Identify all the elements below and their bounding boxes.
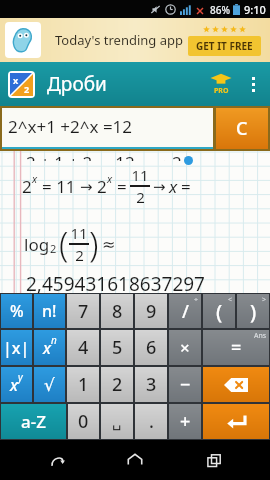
staticText: → — [153, 178, 166, 195]
button[interactable]: n! — [34, 294, 65, 328]
button[interactable]: Today's trending app — [0, 18, 270, 62]
button[interactable]: GET IT FREE — [196, 39, 253, 53]
button[interactable]: |x| — [1, 330, 32, 365]
staticText: ) — [89, 221, 99, 267]
staticText: ÷ — [194, 295, 199, 305]
staticText: x — [13, 74, 19, 86]
staticText: = — [117, 175, 127, 198]
staticText: 6 — [146, 335, 157, 360]
button[interactable]: C — [216, 108, 268, 149]
button[interactable]: × — [169, 330, 201, 365]
staticText: ( — [216, 298, 223, 325]
staticText: a-Z — [21, 410, 46, 433]
staticText: 1 — [78, 372, 89, 397]
staticText: 5 — [112, 335, 123, 360]
staticText: x — [107, 172, 113, 186]
staticText: ) — [250, 298, 257, 325]
staticText: Ans — [254, 331, 267, 341]
button[interactable]: Home — [113, 440, 157, 480]
button[interactable]: x — [1, 367, 32, 402]
button[interactable]: 2 — [101, 367, 133, 402]
staticText: Дроби — [47, 71, 107, 97]
button[interactable]: . — [135, 404, 167, 439]
staticText: 3 — [146, 372, 157, 397]
staticText: n! — [42, 300, 57, 322]
staticText: y — [18, 370, 23, 384]
staticText: < — [228, 295, 233, 305]
staticText: 0 — [78, 409, 89, 434]
button[interactable]: − — [169, 367, 201, 402]
staticText: 2 — [50, 241, 57, 256]
staticText: x — [169, 175, 178, 198]
staticText: % — [10, 300, 24, 322]
button[interactable]: % — [1, 294, 32, 328]
staticText: C — [236, 116, 248, 141]
button[interactable]: 1 — [67, 367, 99, 402]
staticText: √ — [44, 375, 55, 395]
staticText: x — [43, 337, 51, 359]
button[interactable]: Delete — [203, 367, 269, 402]
staticText: 2 — [112, 372, 123, 397]
button[interactable]: Recents — [192, 440, 236, 480]
button[interactable]: More options — [244, 69, 262, 99]
staticText: PRO — [214, 86, 229, 96]
staticText: 4 — [78, 335, 89, 360]
button[interactable]: 0 — [68, 404, 99, 439]
staticText: Today's trending app — [55, 31, 183, 49]
button[interactable]: 2^x+1 +2^x =12 — [2, 108, 213, 149]
staticText: × — [180, 336, 190, 359]
button[interactable]: Back — [35, 440, 79, 480]
staticText: − — [180, 372, 191, 397]
button[interactable]: √ — [34, 367, 65, 402]
staticText: . — [149, 409, 154, 434]
staticText: 2 — [24, 83, 30, 95]
staticText: → — [80, 178, 93, 195]
staticText: 11 — [131, 165, 149, 185]
staticText: ≈ — [102, 235, 116, 254]
staticText: 2 — [136, 187, 145, 207]
staticText: = — [231, 335, 242, 360]
button[interactable]: ( — [203, 294, 235, 328]
button[interactable]: ␣ — [101, 404, 133, 439]
button[interactable]: / — [169, 294, 201, 328]
staticText: |x| — [3, 337, 30, 359]
staticText: 86% — [210, 3, 230, 17]
staticText: n — [51, 333, 57, 347]
staticText: = 11 — [42, 175, 76, 198]
staticText: 2 — [22, 175, 32, 198]
button[interactable]: 9 — [135, 294, 167, 328]
button[interactable]: 6 — [135, 330, 167, 365]
staticText: 9 — [146, 299, 157, 324]
button[interactable]: = — [203, 330, 269, 365]
button[interactable]: ) — [237, 294, 269, 328]
staticText: 11 — [70, 223, 88, 243]
button[interactable]: Upgrade to PRO — [206, 73, 236, 96]
button[interactable]: 7 — [67, 294, 99, 328]
staticText: 2,459431618637297 — [26, 271, 205, 293]
staticText: 9:10 — [244, 2, 266, 17]
button[interactable]: Enter — [203, 404, 269, 439]
staticText: 2 — [75, 245, 84, 265]
button[interactable]: x — [34, 330, 65, 365]
button[interactable]: 8 — [101, 294, 133, 328]
button[interactable]: 5 — [101, 330, 133, 365]
staticText: log — [24, 233, 50, 256]
staticText: x — [10, 374, 18, 396]
staticText: 8 — [112, 299, 123, 324]
staticText: / — [182, 299, 189, 324]
button[interactable]: App icon — [10, 73, 33, 96]
staticText: 7 — [78, 299, 89, 324]
staticText: x — [32, 172, 38, 186]
staticText: ␣ — [112, 413, 122, 430]
staticText: GET IT FREE — [196, 39, 253, 53]
staticText: 2 — [97, 175, 107, 198]
staticText: ( — [59, 221, 69, 267]
staticText: + — [180, 409, 191, 434]
button[interactable]: 3 — [135, 367, 167, 402]
button[interactable]: 4 — [67, 330, 99, 365]
staticText: = — [181, 175, 191, 198]
staticText: 2 + 1 + 2 = 12 • 2 — [26, 151, 182, 161]
staticText: > — [262, 295, 267, 305]
button[interactable]: a-Z — [1, 404, 66, 439]
button[interactable]: + — [169, 404, 201, 439]
